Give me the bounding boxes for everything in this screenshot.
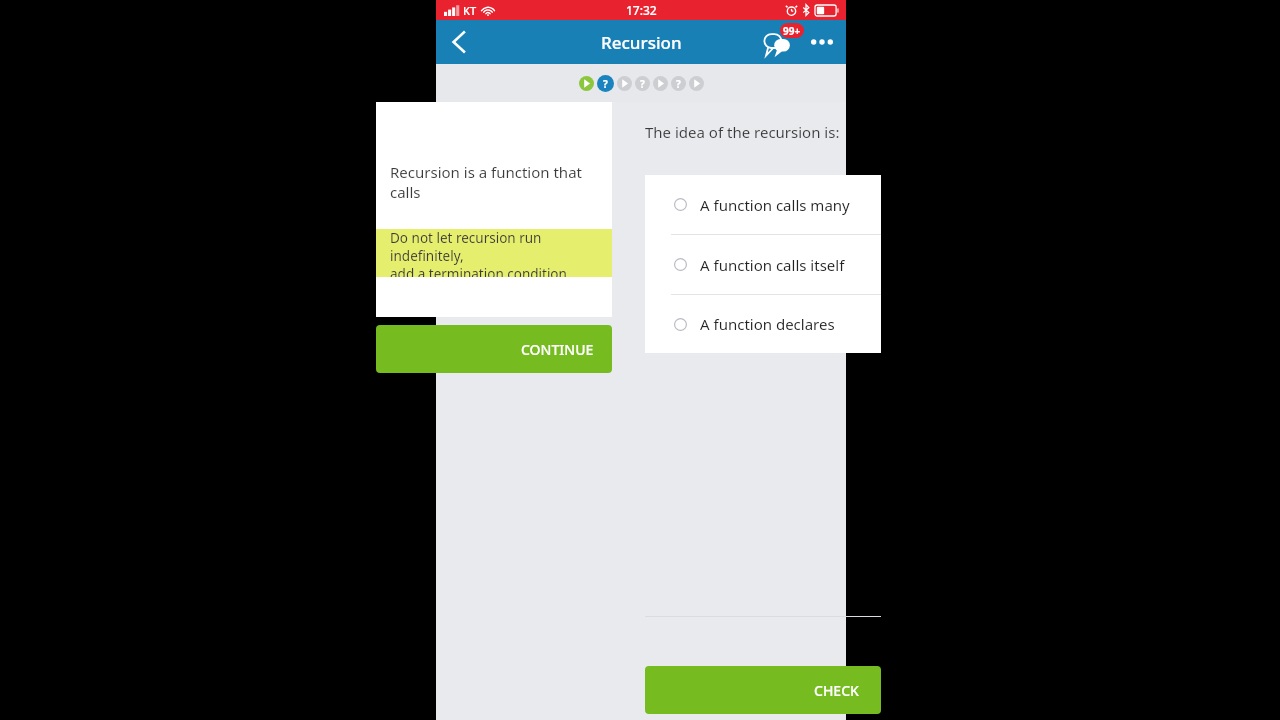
- button[interactable]: Comments: [758, 20, 802, 64]
- button[interactable]: A function calls many functions: [645, 175, 881, 234]
- button[interactable]: A function calls itself: [645, 235, 881, 294]
- button[interactable]: ?: [635, 76, 650, 91]
- button[interactable]: ?: [597, 75, 614, 92]
- button[interactable]: [579, 76, 594, 91]
- staticText: add a termination condition.: [390, 265, 571, 277]
- button[interactable]: [689, 76, 704, 91]
- staticText: A function calls itself: [700, 255, 845, 275]
- button[interactable]: CHECK: [645, 666, 881, 714]
- staticText: ?: [640, 77, 645, 91]
- staticText: A function declares variables: [700, 314, 881, 334]
- staticText: Do not let recursion run indefinitely,: [390, 229, 598, 265]
- button[interactable]: Back: [436, 20, 480, 64]
- staticText: The idea of the recursion is:: [645, 122, 840, 142]
- button[interactable]: [617, 76, 632, 91]
- button[interactable]: ?: [671, 76, 686, 91]
- staticText: 99+: [783, 24, 801, 38]
- staticText: CHECK: [814, 681, 859, 700]
- button[interactable]: [653, 76, 668, 91]
- button[interactable]: A function declares variables: [645, 295, 881, 353]
- staticText: Recursion is a function that calls: [390, 162, 598, 202]
- button[interactable]: CONTINUE: [376, 325, 612, 373]
- staticText: A function calls many functions: [700, 195, 881, 215]
- staticText: Recursion: [601, 31, 682, 54]
- button[interactable]: More options: [802, 20, 842, 64]
- staticText: 17:32: [626, 2, 657, 18]
- staticText: ?: [603, 77, 608, 91]
- staticText: KT: [463, 3, 477, 18]
- staticText: ?: [676, 77, 681, 91]
- staticText: CONTINUE: [521, 340, 594, 359]
